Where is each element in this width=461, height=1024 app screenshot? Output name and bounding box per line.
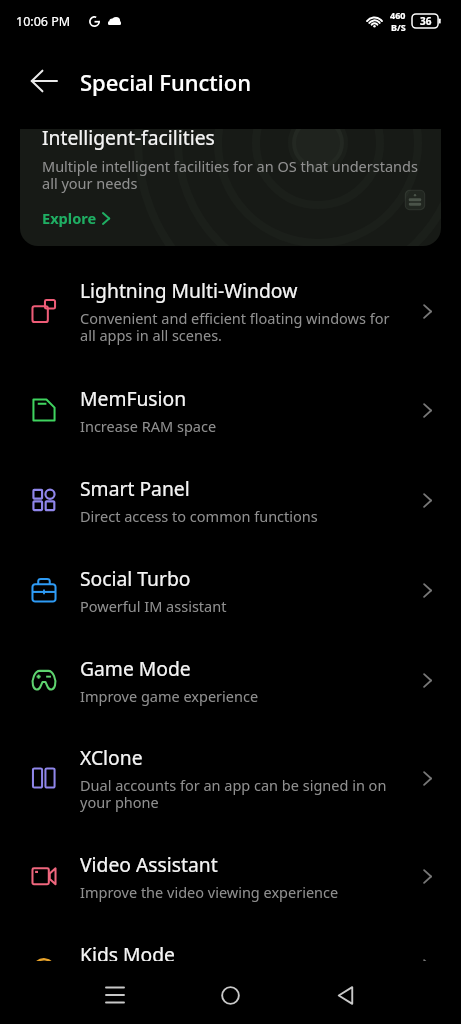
button[interactable]: XClone <box>0 735 461 821</box>
staticText: Improve the video viewing experience <box>80 882 339 902</box>
staticText: Special Function <box>80 67 251 97</box>
button[interactable]: Back <box>316 966 374 1024</box>
button[interactable]: Video Assistant <box>0 842 461 910</box>
staticText: Safe for kids <box>80 972 164 992</box>
staticText: 460 <box>390 9 406 21</box>
button[interactable]: MemFusion <box>0 376 461 444</box>
button[interactable]: Smart Panel <box>0 466 461 534</box>
staticText: Social Turbo <box>80 565 191 591</box>
staticText: Game Mode <box>80 655 191 681</box>
staticText: Dual accounts for an app can be signed i… <box>80 775 387 812</box>
staticText: Convenient and efficient floating window… <box>80 308 390 345</box>
button[interactable]: Back <box>19 59 69 103</box>
staticText: B/S <box>391 21 406 33</box>
staticText: Increase RAM space <box>80 416 217 436</box>
staticText: Multiple intelligent facilities for an O… <box>42 156 418 193</box>
staticText: 10:06 PM <box>16 13 71 30</box>
staticText: Smart Panel <box>80 475 190 501</box>
button[interactable]: Game Mode <box>0 646 461 714</box>
staticText: 36 <box>420 14 432 28</box>
staticText: XClone <box>80 744 143 770</box>
button[interactable]: Intelligent-facilities <box>20 129 441 246</box>
button[interactable]: Kids Mode <box>0 932 461 1000</box>
staticText: Direct access to common functions <box>80 506 318 526</box>
button[interactable]: Social Turbo <box>0 556 461 624</box>
staticText: Improve game experience <box>80 686 259 706</box>
button[interactable]: Lightning Multi-Window <box>0 268 461 354</box>
button[interactable]: Explore <box>42 208 110 228</box>
button[interactable]: Recents <box>86 966 144 1024</box>
button[interactable]: Home <box>201 966 259 1024</box>
staticText: Intelligent-facilities <box>42 129 215 150</box>
staticText: MemFusion <box>80 385 187 411</box>
staticText: Kids Mode <box>80 941 175 967</box>
staticText: Lightning Multi-Window <box>80 277 298 303</box>
staticText: Powerful IM assistant <box>80 596 227 616</box>
staticText: Explore <box>42 208 97 228</box>
staticText: Video Assistant <box>80 851 218 877</box>
